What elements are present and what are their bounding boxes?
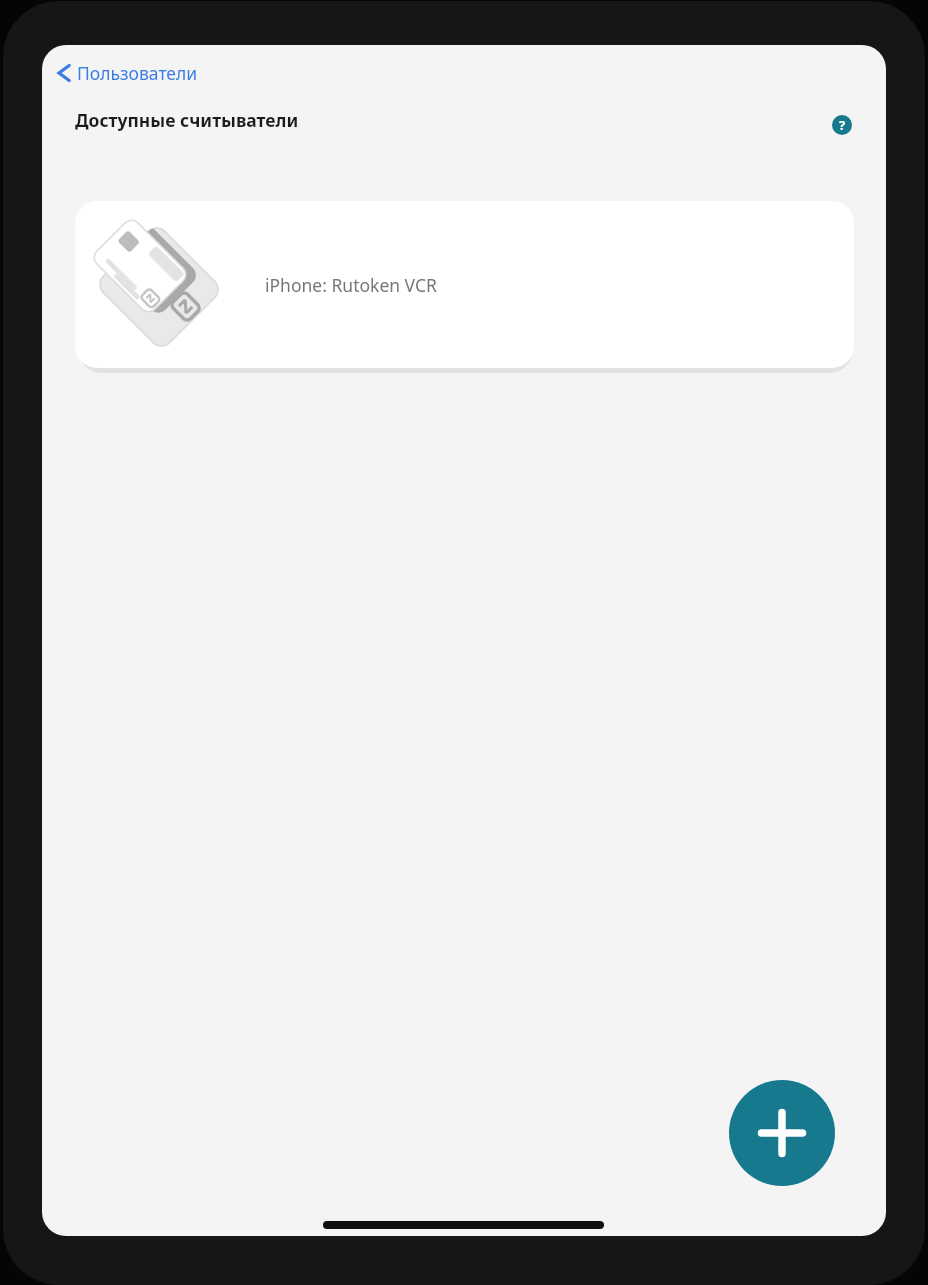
staticText: Доступные считыватели bbox=[75, 108, 299, 132]
button[interactable]: ? bbox=[832, 115, 852, 135]
staticText: ? bbox=[839, 116, 846, 134]
staticText: Пользователи bbox=[77, 61, 198, 85]
staticText: iPhone: Rutoken VCR bbox=[265, 273, 437, 297]
button[interactable]: Пользователи bbox=[55, 57, 200, 89]
button[interactable]: iPhone: Rutoken VCR bbox=[75, 201, 854, 368]
button[interactable] bbox=[729, 1080, 835, 1186]
